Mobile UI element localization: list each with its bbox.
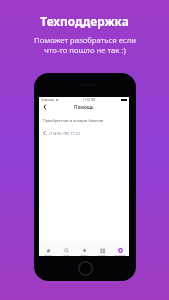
staticText: Оператор (41, 98, 55, 102)
staticText: +7 (495) 785-17-03 (48, 131, 80, 136)
button[interactable]: Афиша (75, 241, 93, 256)
staticText: 11:52 PM (83, 98, 96, 102)
button[interactable]: Back (39, 101, 50, 112)
button[interactable]: Билеты (93, 241, 111, 256)
button[interactable]: +7 (495) 785-17-03 (44, 130, 129, 136)
staticText: Поможет разобраться если что-то пошло не… (34, 35, 136, 55)
staticText: Сегодня (44, 254, 53, 256)
staticText: Билеты (98, 254, 106, 256)
staticText: Приобретение и возврат билетов (43, 118, 104, 123)
button[interactable]: Сегодня (39, 241, 57, 256)
button[interactable]: Поиск (57, 241, 75, 256)
staticText: Помощь (74, 104, 94, 110)
staticText: Афиша (80, 254, 88, 256)
staticText: Настройки (114, 254, 126, 256)
staticText: Техподдержка (40, 13, 129, 29)
button[interactable]: Настройки (111, 241, 129, 256)
staticText: Поиск (63, 254, 70, 256)
